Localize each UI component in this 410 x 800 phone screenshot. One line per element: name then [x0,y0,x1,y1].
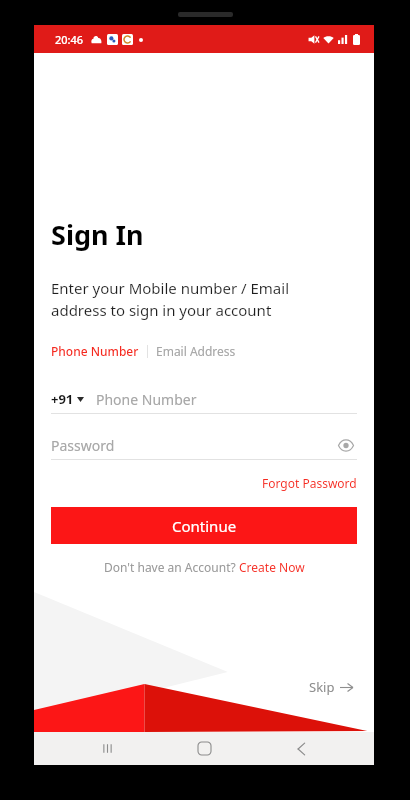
button[interactable]: Continue [51,507,357,544]
staticText: Continue [172,516,237,536]
button[interactable]: Forgot Password [262,473,357,493]
button[interactable]: Phone Number [51,341,139,361]
staticText: Forgot Password [262,475,357,491]
staticText: 20:46 [55,32,84,47]
staticText: Don't have an Account? [104,559,239,575]
button[interactable]: Show password [335,434,357,456]
staticText: Sign In [51,216,144,253]
button[interactable]: +91 [51,390,88,408]
staticText: +91 [51,390,74,408]
staticText: Phone Number [51,343,139,359]
button[interactable]: Create Now [239,559,305,575]
staticText: Email Address [156,343,236,359]
staticText: Skip [309,678,335,696]
button[interactable]: Skip [305,674,357,700]
staticText: Phone Number [96,390,197,409]
staticText: Password [51,436,335,455]
staticText: Create Now [239,559,305,575]
button[interactable]: Home [180,732,228,765]
button[interactable]: Recent apps [83,732,131,765]
staticText: Enter your Mobile number / Email address… [51,278,290,321]
button[interactable]: Email Address [156,341,236,361]
button[interactable]: Back [277,732,325,765]
